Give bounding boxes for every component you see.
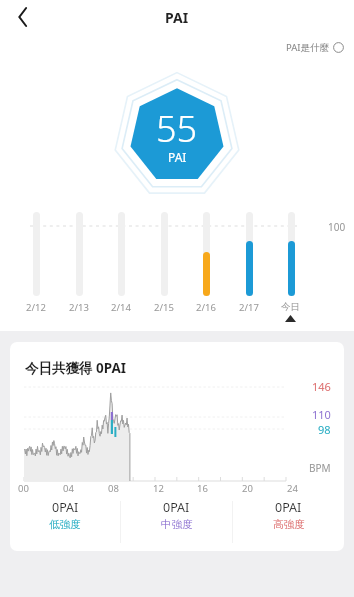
staticText: 110 (312, 407, 331, 422)
staticText: 2/16 (196, 301, 216, 314)
button[interactable]: 0PAI (10, 499, 120, 545)
staticText: 低強度 (49, 518, 81, 531)
staticText: 今日 (281, 301, 300, 313)
staticText: BPM (309, 461, 331, 475)
staticText: 今日共獲得 0PAI (25, 359, 127, 377)
staticText: PAI是什麼 (286, 41, 330, 54)
staticText: 2/17 (239, 301, 259, 314)
staticText: 2/12 (26, 301, 46, 314)
staticText: 16 (197, 482, 208, 495)
staticText: 146 (312, 379, 331, 394)
staticText: 55 (156, 104, 198, 153)
button[interactable]: PAI是什麼 (0, 34, 344, 60)
staticText: 2/13 (69, 301, 89, 314)
staticText: 08 (108, 482, 119, 495)
staticText: PAI (168, 149, 187, 165)
staticText: 00 (18, 482, 29, 495)
staticText: 100 (328, 220, 346, 234)
staticText: 0PAI (163, 499, 190, 516)
staticText: PAI (165, 8, 189, 27)
button[interactable]: 0PAI (121, 499, 232, 545)
staticText: 0PAI (52, 499, 79, 516)
button[interactable]: Back (6, 0, 40, 34)
staticText: 04 (63, 482, 74, 495)
staticText: 中強度 (161, 518, 193, 531)
staticText: 20 (242, 482, 253, 495)
staticText: 98 (318, 422, 331, 437)
staticText: 2/14 (111, 301, 131, 314)
staticText: 24 (287, 482, 298, 495)
staticText: 2/15 (154, 301, 174, 314)
button[interactable]: 0PAI (233, 499, 344, 545)
staticText: 高強度 (273, 518, 305, 531)
staticText: 12 (153, 482, 164, 495)
staticText: 0PAI (275, 499, 302, 516)
